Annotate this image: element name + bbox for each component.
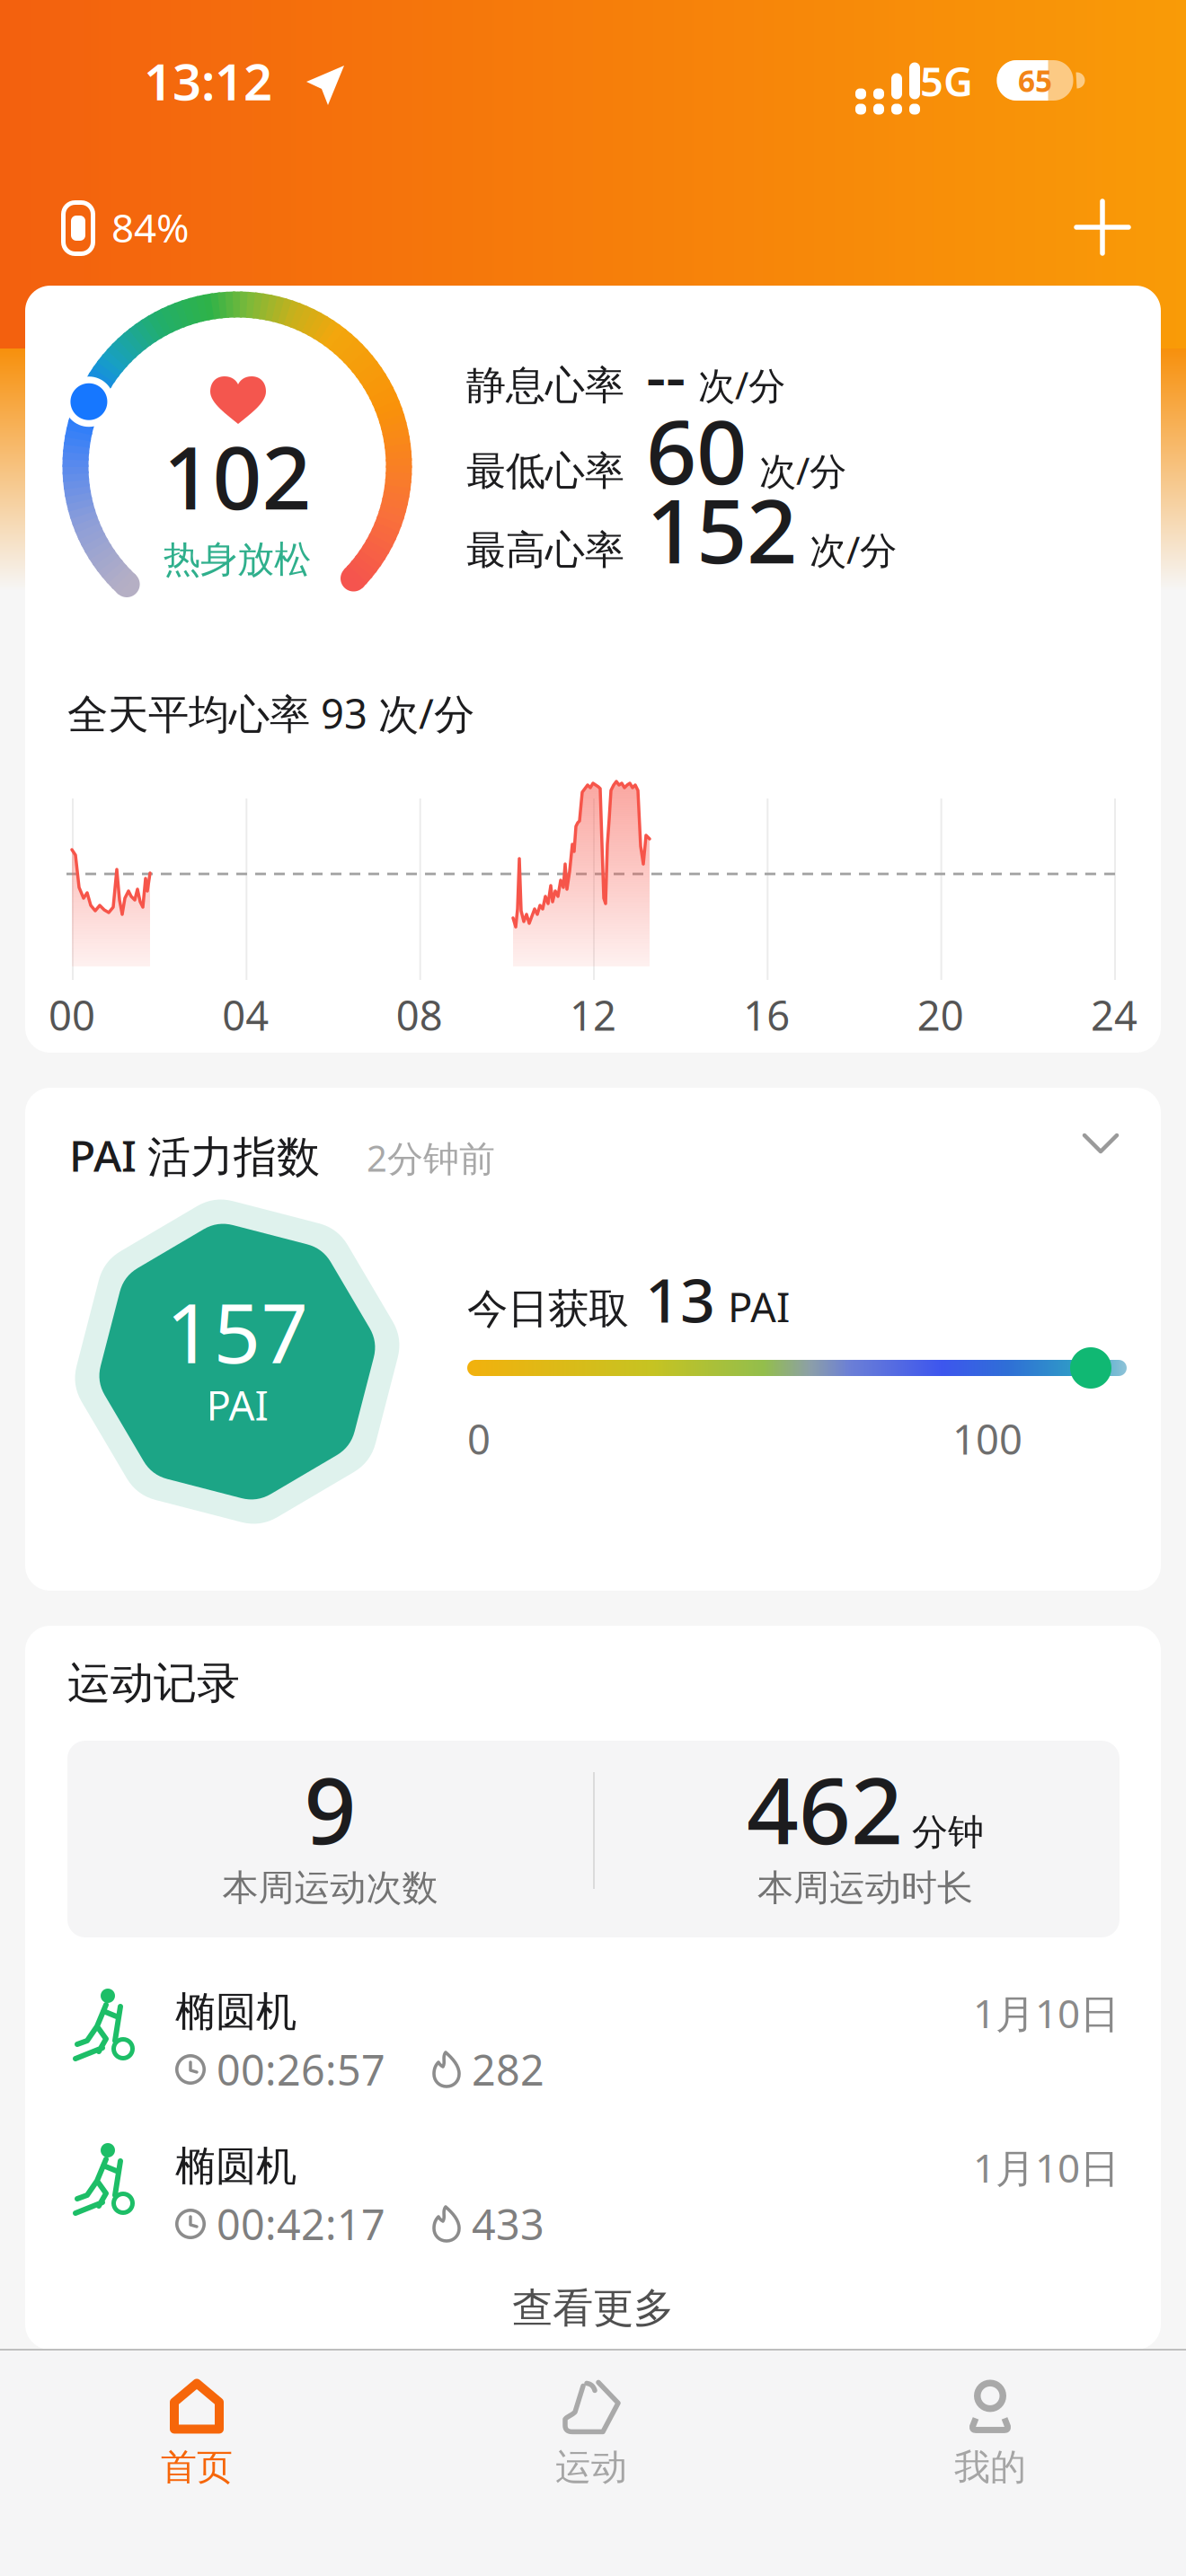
staticText: 次/分 bbox=[759, 446, 846, 495]
staticText: 282 bbox=[472, 2042, 544, 2097]
staticText: 20 bbox=[917, 988, 964, 1042]
staticText: 5G bbox=[920, 54, 973, 108]
staticText: 08 bbox=[396, 988, 443, 1042]
button[interactable]: 收起 bbox=[1072, 1123, 1129, 1164]
staticText: 9 bbox=[304, 1749, 356, 1869]
staticText: 152 bbox=[646, 470, 797, 588]
staticText: 本周运动时长 bbox=[757, 1866, 973, 1910]
staticText: 运动记录 bbox=[67, 1657, 240, 1710]
staticText: 最高心率 bbox=[466, 526, 624, 574]
staticText: 次/分 bbox=[810, 525, 897, 574]
button[interactable]: 添加设备 bbox=[1075, 199, 1130, 255]
staticText: 462 bbox=[747, 1749, 903, 1869]
staticText: 静息心率 bbox=[466, 361, 624, 410]
staticText: PAI 活力指数 bbox=[69, 1126, 320, 1184]
staticText: 13 bbox=[645, 1258, 715, 1339]
staticText: 全天平均心率 93 次/分 bbox=[67, 686, 474, 740]
button[interactable]: 首页 bbox=[98, 2362, 296, 2506]
staticText: 2分钟前 bbox=[367, 1134, 495, 1182]
staticText: 00 bbox=[49, 988, 95, 1042]
staticText: 运动 bbox=[555, 2445, 627, 2489]
staticText: 102 bbox=[163, 419, 311, 533]
staticText: 13:12 bbox=[144, 47, 272, 114]
staticText: 1月10日 bbox=[973, 1987, 1120, 2039]
button[interactable]: 椭圆机 bbox=[67, 2141, 1120, 2267]
staticText: 65 bbox=[1018, 61, 1052, 100]
staticText: 84% bbox=[111, 201, 190, 253]
staticText: 00:42:17 bbox=[217, 2196, 385, 2252]
staticText: 次/分 bbox=[698, 360, 785, 409]
button[interactable]: 我的 bbox=[891, 2362, 1089, 2506]
staticText: 查看更多 bbox=[512, 2283, 674, 2333]
button[interactable]: 运动 bbox=[492, 2362, 690, 2506]
button[interactable]: 查看更多 bbox=[413, 2280, 773, 2337]
staticText: 椭圆机 bbox=[175, 1987, 296, 2037]
staticText: 16 bbox=[743, 988, 790, 1042]
staticText: 我的 bbox=[954, 2445, 1026, 2489]
staticText: 分钟 bbox=[912, 1810, 984, 1854]
staticText: 热身放松 bbox=[164, 537, 311, 582]
staticText: 1月10日 bbox=[973, 2141, 1120, 2194]
staticText: PAI bbox=[728, 1280, 790, 1334]
staticText: 本周运动次数 bbox=[222, 1866, 438, 1910]
staticText: 椭圆机 bbox=[175, 2141, 296, 2191]
staticText: 60 bbox=[646, 391, 747, 509]
staticText: 433 bbox=[472, 2196, 544, 2252]
staticText: 0 bbox=[467, 1412, 491, 1466]
staticText: 100 bbox=[952, 1412, 1022, 1466]
staticText: -- bbox=[646, 333, 686, 416]
staticText: 最低心率 bbox=[466, 447, 624, 495]
staticText: 今日获取 bbox=[467, 1284, 629, 1334]
staticText: 04 bbox=[222, 988, 269, 1042]
staticText: 24 bbox=[1091, 988, 1137, 1042]
staticText: 首页 bbox=[161, 2445, 233, 2489]
staticText: PAI bbox=[206, 1378, 268, 1432]
staticText: 00:26:57 bbox=[217, 2042, 385, 2097]
staticText: 157 bbox=[166, 1276, 309, 1386]
staticText: 12 bbox=[570, 988, 616, 1042]
button[interactable]: 椭圆机 bbox=[67, 1987, 1120, 2113]
